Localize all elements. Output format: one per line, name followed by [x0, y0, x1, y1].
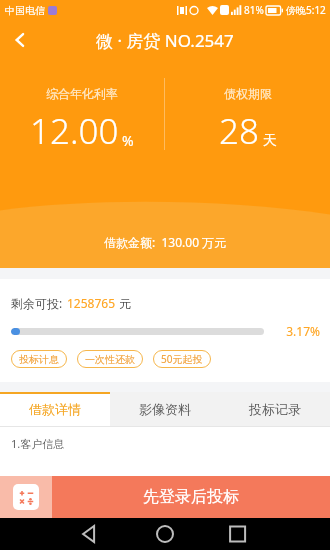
staticText: 1258765 — [67, 295, 116, 311]
staticText: 傍晚5:12 — [286, 3, 326, 17]
staticText: 投标计息 — [19, 353, 59, 366]
staticText: 1.客户信息 — [11, 436, 65, 451]
button[interactable]: 影像资料 — [110, 392, 220, 426]
staticText: 元 — [119, 296, 131, 311]
staticText: 中国电信 — [5, 4, 45, 17]
staticText: 12.00 — [30, 107, 119, 155]
button[interactable]: 先登录后投标 — [52, 476, 330, 518]
staticText: 50元起投 — [161, 352, 203, 366]
button[interactable]: 50元起投 — [153, 350, 211, 368]
staticText: % — [122, 131, 134, 150]
staticText: 投标记录 — [249, 401, 301, 417]
staticText: 28 — [219, 107, 259, 155]
button[interactable]: 一次性还款 — [77, 350, 143, 368]
button[interactable]: 投标记录 — [220, 392, 330, 426]
button[interactable]: 投标计息 — [11, 350, 67, 368]
staticText: 一次性还款 — [85, 353, 135, 366]
button[interactable]: 借款详情 — [0, 392, 110, 426]
staticText: 借款详情 — [29, 401, 81, 417]
staticText: 微 · 房贷 NO.2547 — [96, 29, 234, 52]
staticText: 天 — [263, 132, 277, 150]
staticText: 债权期限 — [224, 86, 272, 101]
button[interactable]: Back — [0, 20, 40, 60]
staticText: 先登录后投标 — [143, 487, 239, 507]
staticText: 影像资料 — [139, 401, 191, 417]
staticText: 81% — [244, 3, 264, 17]
button[interactable]: Calculator — [0, 476, 52, 518]
staticText: 综合年化利率 — [46, 86, 118, 101]
staticText: 3.17% — [274, 323, 320, 339]
staticText: 借款金额: 130.00 万元 — [104, 234, 227, 250]
staticText: 剩余可投: — [11, 295, 63, 311]
